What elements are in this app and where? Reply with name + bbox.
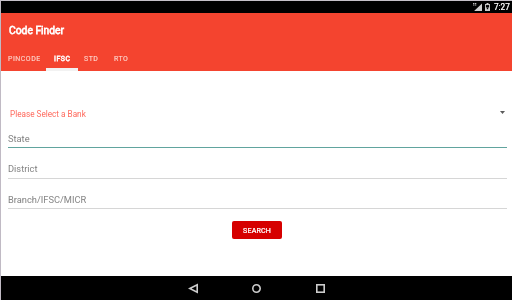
button[interactable]: State [8,129,507,148]
button[interactable]: PINCODE [0,47,48,70]
button[interactable]: RTO [107,47,135,70]
staticText: District [8,163,38,174]
button[interactable]: Please Select a Bank [0,103,512,120]
staticText: IFSC [54,55,71,63]
staticText: State [8,133,30,144]
staticText: 7:27 [494,2,510,12]
staticText: SEARCH [243,226,272,234]
button[interactable]: Recent apps [307,276,333,300]
staticText: Please Select a Bank [10,109,86,119]
button[interactable]: Branch/IFSC/MICR [8,190,507,209]
staticText: Branch/IFSC/MICR [8,194,87,205]
button[interactable]: IFSC [48,47,76,70]
staticText: Code Finder [9,24,65,36]
button[interactable]: District [8,159,507,179]
staticText: PINCODE [8,55,41,63]
button[interactable]: SEARCH [232,221,282,239]
staticText: RTO [114,55,129,63]
button[interactable]: STD [76,47,107,70]
button[interactable]: Back [180,276,206,300]
staticText: STD [84,55,99,63]
button[interactable]: Home [243,276,269,300]
